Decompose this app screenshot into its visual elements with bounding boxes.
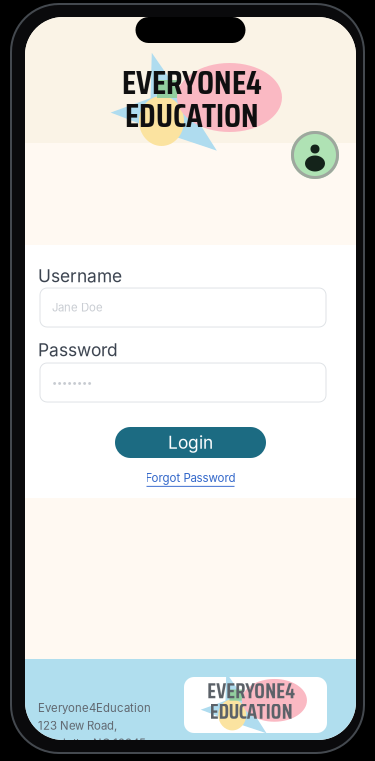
staticText: EDUCATION (210, 695, 293, 728)
staticText: Login (168, 432, 213, 453)
staticText: 123 New Road, (38, 719, 117, 732)
button[interactable]: Forgot Password (115, 471, 266, 489)
staticText: Charlotte, NC 12345 (38, 736, 146, 750)
staticText: •••••••• (52, 377, 92, 388)
staticText: EDUCATION (125, 89, 259, 142)
staticText: EVERYONE4 (207, 675, 295, 707)
button[interactable]: Account (289, 129, 341, 181)
staticText: Forgot Password (145, 471, 235, 485)
staticText: Password (38, 339, 118, 360)
staticText: Username (38, 265, 122, 286)
staticText: Jane Doe (52, 301, 103, 314)
staticText: EVERYONE4 (122, 56, 262, 109)
button[interactable]: Login (115, 427, 266, 458)
staticText: Everyone4Education (38, 701, 151, 715)
